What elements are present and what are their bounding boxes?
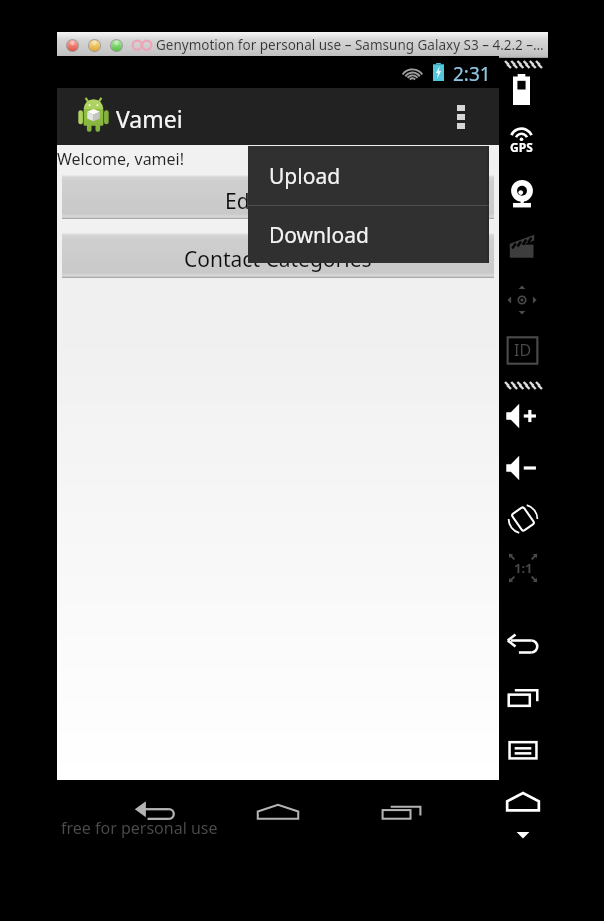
- button[interactable]: Volume down: [504, 452, 542, 484]
- staticText: GPS: [510, 139, 533, 155]
- button[interactable]: GPS: [506, 126, 537, 155]
- staticText: Welcome, vamei!: [57, 148, 185, 170]
- button[interactable]: Home: [237, 787, 319, 837]
- button[interactable]: Battery: [513, 74, 530, 105]
- button[interactable]: Menu: [507, 736, 539, 764]
- button[interactable]: Recents: [506, 684, 540, 712]
- staticText: Edit Profile: [225, 187, 332, 216]
- staticText: Upload: [269, 162, 341, 191]
- staticText: free for personal use: [61, 817, 218, 839]
- button[interactable]: More options: [432, 88, 489, 145]
- staticText: ID: [514, 339, 532, 361]
- button[interactable]: Rotate: [505, 501, 541, 537]
- button[interactable]: Recents: [361, 787, 442, 837]
- button[interactable]: DPad: [505, 283, 539, 317]
- button[interactable]: Download: [248, 206, 489, 263]
- button[interactable]: Upload: [248, 146, 489, 205]
- staticText: Contact Categories: [184, 245, 372, 274]
- button[interactable]: More: [515, 830, 531, 840]
- button[interactable]: Identifiers: [506, 334, 539, 367]
- button[interactable]: Edit Profile: [62, 175, 494, 219]
- button[interactable]: Home: [505, 787, 541, 817]
- staticText: 1:1: [514, 559, 533, 577]
- staticText: Download: [269, 221, 369, 250]
- button[interactable]: Volume up: [504, 400, 542, 432]
- button[interactable]: Contact Categories: [62, 233, 494, 278]
- button[interactable]: Video: [506, 232, 538, 260]
- staticText: 2:31: [453, 61, 491, 87]
- button[interactable]: Back: [506, 630, 540, 660]
- button[interactable]: Camera: [506, 178, 538, 210]
- staticText: Vamei: [116, 103, 183, 134]
- button[interactable]: Scale 1:1: [505, 550, 541, 586]
- staticText: Genymotion for personal use – Samsung Ga…: [156, 36, 544, 54]
- button[interactable]: Back: [116, 787, 193, 836]
